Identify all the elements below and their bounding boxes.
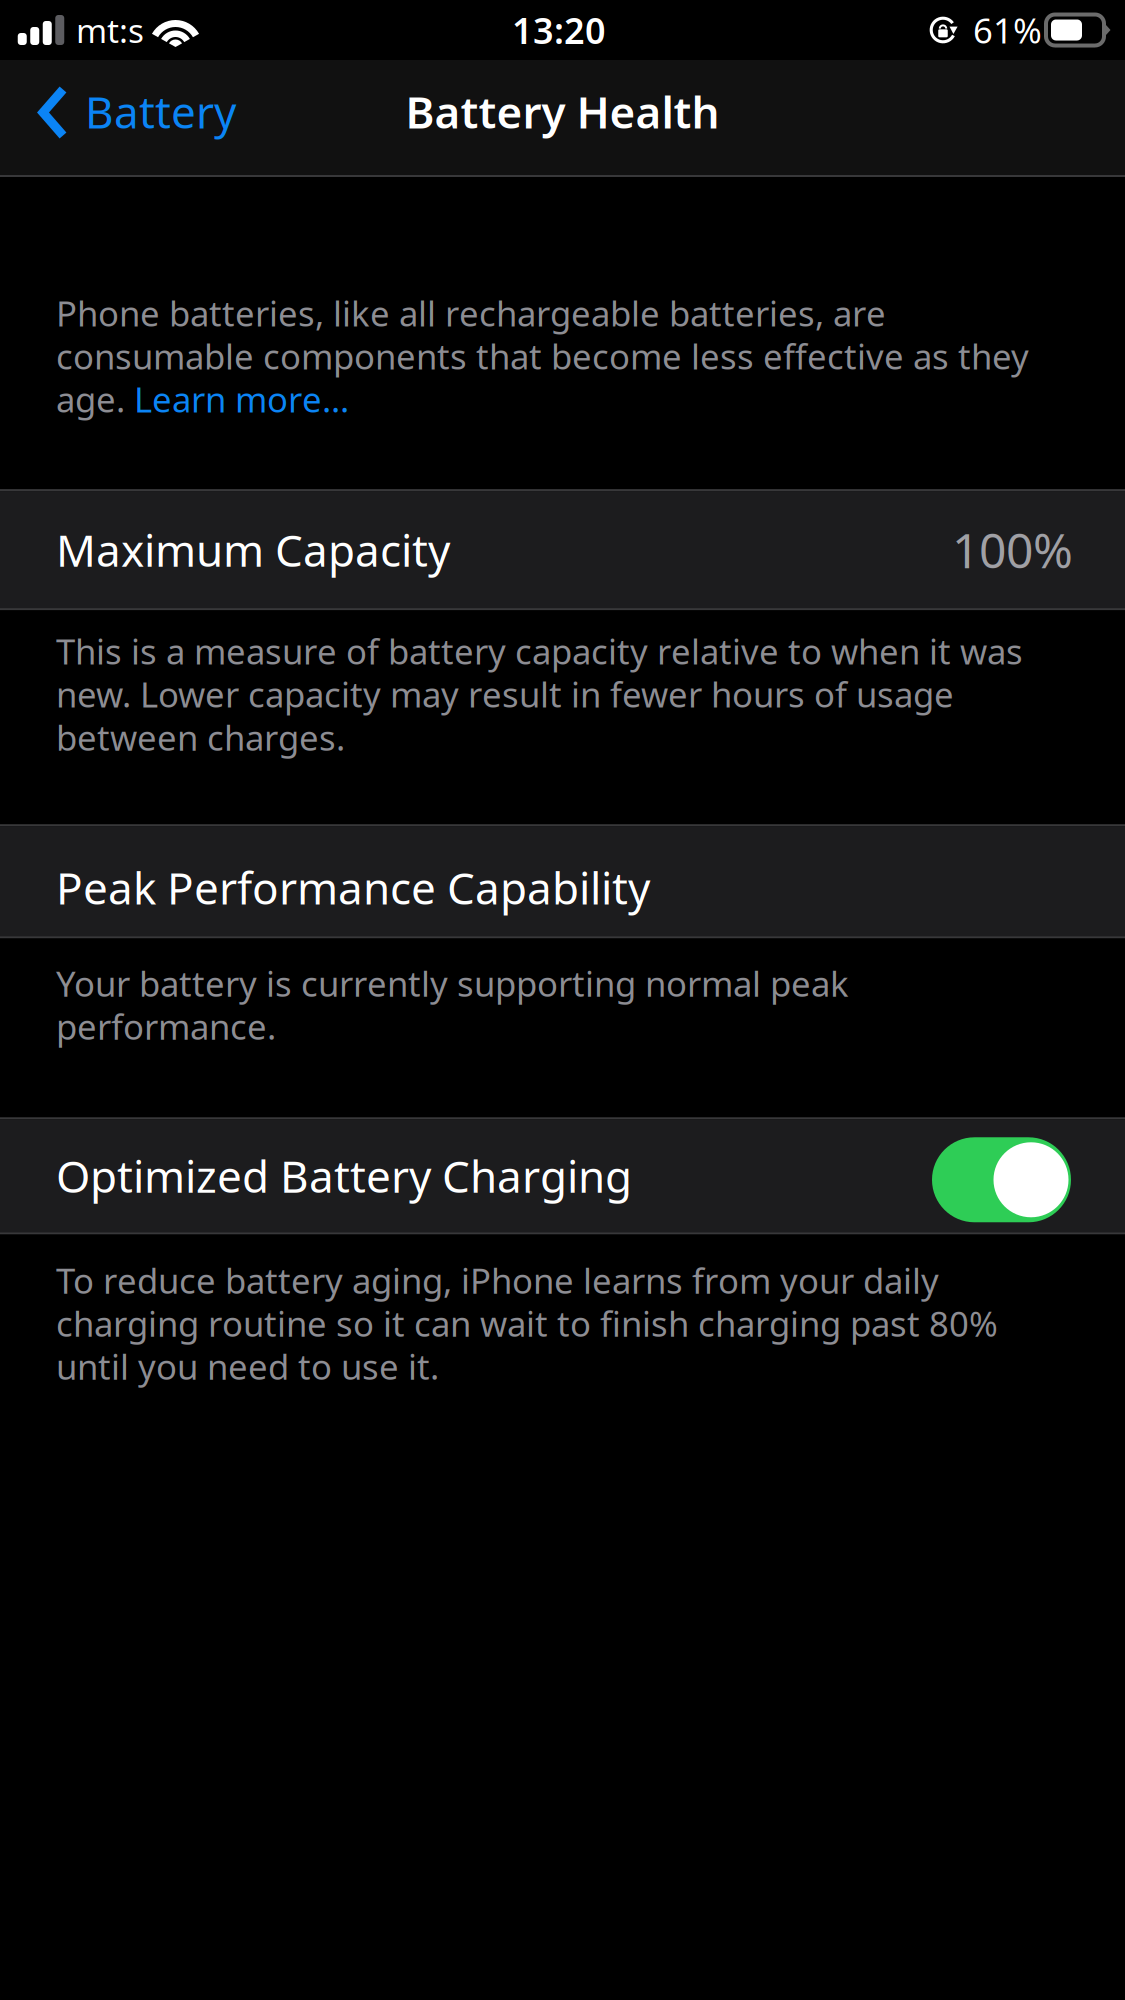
staticText: Battery [85,82,236,141]
staticText: age. [56,376,134,422]
staticText: Peak Performance Capability [56,858,650,917]
staticText: To reduce battery aging, iPhone learns f… [56,1257,998,1389]
staticText: Phone batteries, like all rechargeable b… [56,290,886,336]
button[interactable]: Maximum Capacity [0,491,1125,608]
staticText: Maximum Capacity [56,520,450,579]
button[interactable]: Optimized Battery Charging [932,1137,1071,1222]
staticText: This is a measure of battery capacity re… [56,628,1023,760]
staticText: Optimized Battery Charging [56,1147,632,1205]
staticText: 100% [952,518,1073,581]
staticText: 13:20 [512,6,606,54]
staticText: consumable components that become less e… [56,333,1029,379]
button[interactable]: Peak Performance Capability [0,826,1125,936]
button[interactable]: Battery [0,60,260,175]
staticText: mt:s [76,8,144,52]
staticText: 61% [973,7,1042,53]
staticText: Learn more... [134,376,349,422]
button[interactable]: Learn more... [134,376,349,422]
staticText: Battery Health [405,82,719,141]
staticText: Your battery is currently supporting nor… [56,960,849,1049]
